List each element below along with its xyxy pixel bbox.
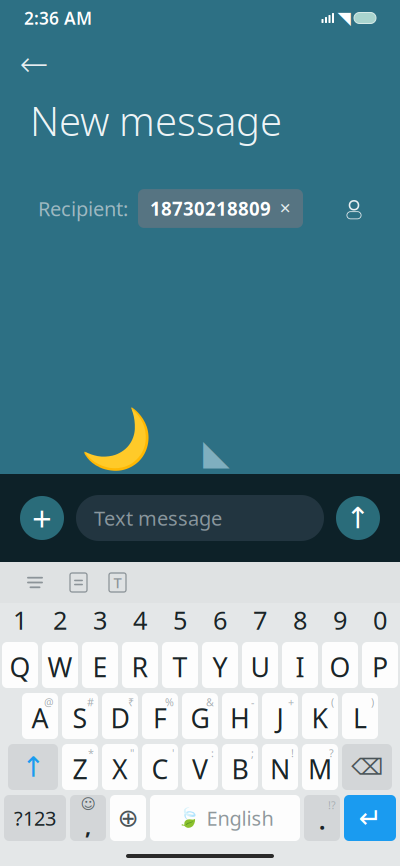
staticText: ?: [329, 746, 334, 760]
staticText: H: [230, 700, 250, 736]
staticText: ◣: [203, 433, 230, 472]
staticText: S: [72, 700, 87, 736]
button[interactable]: :: [182, 744, 218, 790]
staticText: 3: [93, 603, 107, 637]
button[interactable]: Choose contact: [342, 197, 366, 219]
staticText: 9: [333, 603, 347, 637]
staticText: !: [291, 746, 294, 760]
staticText: ↵: [358, 802, 381, 834]
staticText: ↑: [21, 751, 44, 783]
button[interactable]: 7: [240, 603, 280, 637]
staticText: +: [288, 695, 294, 709]
button[interactable]: Clipboard: [22, 569, 48, 595]
button[interactable]: Text edit: [70, 573, 87, 592]
staticText: B: [231, 751, 248, 787]
staticText: ↑: [345, 501, 370, 535]
button[interactable]: [2, 642, 38, 688]
button[interactable]: [282, 642, 318, 688]
button[interactable]: [162, 642, 198, 688]
staticText: ⊕: [117, 804, 138, 832]
button[interactable]: 4: [120, 603, 160, 637]
button[interactable]: [42, 642, 78, 688]
staticText: *: [88, 746, 94, 760]
staticText: #: [87, 695, 94, 709]
button[interactable]: 18730218809: [138, 189, 303, 228]
staticText: V: [192, 751, 208, 787]
button[interactable]: ": [102, 744, 138, 790]
staticText: New message: [30, 94, 282, 147]
button[interactable]: Emoji and comma: [70, 795, 106, 841]
staticText: 1: [13, 603, 27, 637]
button[interactable]: Text message: [76, 495, 324, 541]
button[interactable]: 🍃: [150, 795, 300, 841]
staticText: ✕: [279, 200, 291, 217]
button[interactable]: 2: [40, 603, 80, 637]
staticText: C: [151, 751, 168, 787]
button[interactable]: @: [22, 693, 58, 739]
button[interactable]: -: [222, 693, 258, 739]
button[interactable]: Attach: [20, 496, 64, 540]
button[interactable]: Back: [12, 44, 56, 84]
button[interactable]: [122, 642, 158, 688]
staticText: P: [372, 649, 388, 685]
button[interactable]: Shift: [8, 744, 58, 790]
button[interactable]: !: [262, 744, 298, 790]
button[interactable]: ': [142, 744, 178, 790]
staticText: G: [190, 700, 209, 736]
staticText: 4: [133, 603, 147, 637]
button[interactable]: #: [62, 693, 98, 739]
staticText: Q: [9, 649, 30, 685]
staticText: -: [251, 695, 254, 709]
button[interactable]: 9: [320, 603, 360, 637]
button[interactable]: &: [182, 693, 218, 739]
button[interactable]: ;: [222, 744, 258, 790]
staticText: M: [308, 751, 332, 787]
button[interactable]: ): [342, 693, 378, 739]
staticText: Y: [212, 649, 227, 685]
button[interactable]: 1: [0, 603, 40, 637]
button[interactable]: (: [302, 693, 338, 739]
button[interactable]: Numbers: [4, 795, 66, 841]
staticText: Text message: [94, 505, 222, 531]
button[interactable]: 3: [80, 603, 120, 637]
button[interactable]: %: [142, 693, 178, 739]
staticText: Z: [72, 751, 87, 787]
staticText: L: [353, 700, 367, 736]
button[interactable]: Delete: [342, 744, 392, 790]
staticText: 🍃: [176, 807, 199, 829]
staticText: ?123: [14, 805, 56, 831]
staticText: 2:36 AM: [24, 6, 92, 29]
button[interactable]: 5: [160, 603, 200, 637]
staticText: O: [329, 649, 350, 685]
button[interactable]: Send: [336, 496, 380, 540]
staticText: E: [92, 649, 107, 685]
staticText: ₹: [128, 695, 134, 709]
button[interactable]: *: [62, 744, 98, 790]
button[interactable]: +: [262, 693, 298, 739]
staticText: @: [44, 695, 54, 709]
staticText: A: [31, 700, 48, 736]
button[interactable]: ₹: [102, 693, 138, 739]
staticText: ☺: [80, 795, 95, 812]
button[interactable]: [202, 642, 238, 688]
button[interactable]: Change keyboard language: [110, 795, 146, 841]
button[interactable]: ?: [302, 744, 338, 790]
staticText: English: [206, 805, 273, 831]
button[interactable]: [82, 642, 118, 688]
staticText: ': [172, 746, 174, 760]
button[interactable]: 0: [360, 603, 400, 637]
button[interactable]: 8: [280, 603, 320, 637]
button[interactable]: Font: [109, 573, 126, 592]
staticText: !?: [328, 798, 336, 812]
button[interactable]: [362, 642, 398, 688]
staticText: .: [319, 806, 325, 836]
staticText: W: [47, 649, 72, 685]
button[interactable]: Period: [304, 795, 340, 841]
staticText: X: [112, 751, 128, 787]
button[interactable]: 6: [200, 603, 240, 637]
staticText: I: [295, 649, 304, 685]
button[interactable]: Return: [344, 795, 396, 841]
staticText: J: [276, 700, 283, 736]
button[interactable]: [242, 642, 278, 688]
button[interactable]: [322, 642, 358, 688]
